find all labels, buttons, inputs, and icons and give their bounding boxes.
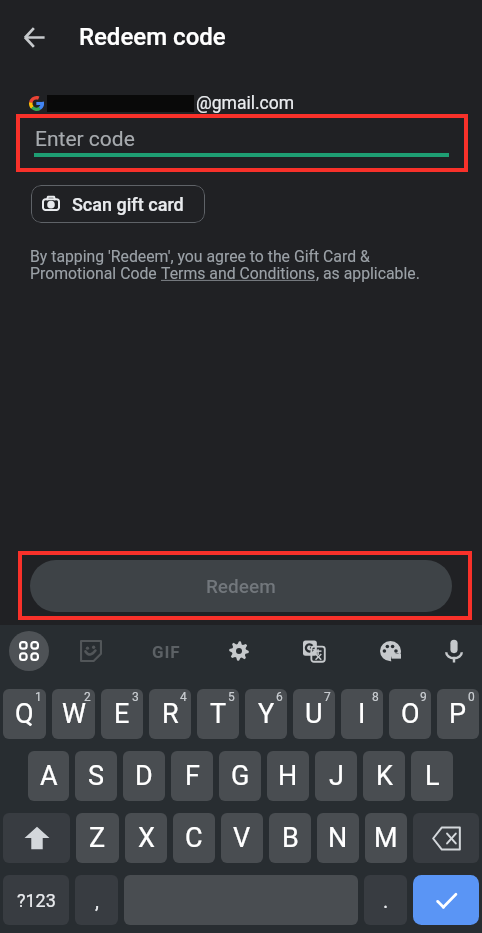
staticText: 0: [468, 690, 475, 704]
staticText: , as applicable.: [316, 264, 420, 283]
staticText: Scan gift card: [72, 194, 184, 215]
staticText: K: [376, 760, 393, 792]
button[interactable]: Switch keyboard mode: [9, 631, 49, 671]
button[interactable]: Enter: [413, 875, 479, 925]
button[interactable]: L: [411, 751, 453, 801]
button[interactable]: N: [317, 813, 359, 863]
staticText: L: [425, 760, 440, 792]
staticText: .: [383, 889, 389, 912]
button[interactable]: E: [101, 689, 143, 739]
button[interactable]: Shift: [3, 813, 70, 863]
button[interactable]: W: [52, 689, 95, 739]
staticText: Q: [15, 698, 34, 730]
staticText: 1: [35, 690, 42, 704]
button[interactable]: U: [293, 689, 335, 739]
button[interactable]: M: [365, 813, 407, 863]
staticText: S: [88, 760, 105, 792]
button[interactable]: Back: [16, 19, 53, 56]
staticText: U: [305, 698, 323, 730]
button[interactable]: ?123: [3, 875, 69, 925]
staticText: 5: [228, 690, 235, 704]
staticText: Promotional Code: [30, 264, 161, 283]
button[interactable]: R: [149, 689, 191, 739]
staticText: G: [231, 760, 250, 792]
button[interactable]: H: [267, 751, 309, 801]
button[interactable]: .: [364, 875, 407, 925]
staticText: ?123: [17, 890, 56, 911]
button[interactable]: S: [75, 751, 117, 801]
button[interactable]: Q: [3, 689, 46, 739]
button[interactable]: G: [219, 751, 261, 801]
staticText: O: [401, 698, 420, 730]
staticText: J: [329, 760, 344, 792]
button[interactable]: V: [221, 813, 263, 863]
button[interactable]: D: [123, 751, 165, 801]
button[interactable]: Z: [76, 813, 119, 863]
staticText: V: [233, 822, 251, 854]
button[interactable]: Settings: [217, 629, 261, 673]
staticText: 4: [180, 690, 187, 704]
staticText: @gmail.com: [196, 93, 295, 114]
staticText: Z: [89, 822, 106, 854]
staticText: E: [114, 698, 130, 730]
button[interactable]: J: [315, 751, 357, 801]
staticText: GIF: [152, 642, 181, 662]
button[interactable]: Terms and Conditions: [161, 264, 316, 283]
staticText: 8: [372, 690, 379, 704]
staticText: 9: [420, 690, 427, 704]
staticText: X: [138, 822, 155, 854]
button[interactable]: Voice input: [432, 629, 476, 673]
button[interactable]: Y: [245, 689, 287, 739]
staticText: F: [185, 760, 200, 792]
button[interactable]: T: [197, 689, 239, 739]
staticText: D: [135, 760, 153, 792]
staticText: 2: [84, 690, 91, 704]
staticText: 3: [132, 690, 139, 704]
button[interactable]: K: [363, 751, 405, 801]
button[interactable]: Theme: [368, 629, 412, 673]
staticText: 7: [324, 690, 331, 704]
staticText: Enter code: [35, 127, 135, 152]
button[interactable]: F: [171, 751, 213, 801]
staticText: Y: [258, 698, 275, 730]
staticText: N: [328, 822, 348, 854]
staticText: I: [358, 698, 366, 730]
staticText: M: [374, 822, 398, 854]
staticText: R: [162, 698, 179, 730]
staticText: Redeem code: [79, 23, 226, 51]
button[interactable]: GIF: [144, 629, 189, 674]
staticText: T: [210, 698, 227, 730]
button[interactable]: Backspace: [413, 813, 479, 863]
button[interactable]: P: [437, 689, 479, 739]
button[interactable]: Translate: [292, 629, 336, 673]
staticText: By tapping 'Redeem', you agree to the Gi…: [30, 247, 370, 266]
staticText: ,: [95, 889, 99, 912]
button[interactable]: X: [125, 813, 167, 863]
button[interactable]: ,: [75, 875, 118, 925]
button[interactable]: O: [389, 689, 431, 739]
button[interactable]: Redeem: [30, 560, 452, 612]
staticText: W: [62, 698, 86, 730]
button[interactable]: Stickers: [69, 629, 113, 673]
button[interactable]: I: [341, 689, 383, 739]
staticText: B: [282, 822, 299, 854]
button[interactable]: A: [28, 751, 69, 801]
staticText: C: [185, 822, 203, 854]
button[interactable]: C: [173, 813, 215, 863]
staticText: 6: [276, 690, 283, 704]
staticText: P: [449, 698, 467, 730]
button[interactable]: B: [269, 813, 311, 863]
staticText: H: [278, 760, 298, 792]
button[interactable]: Scan gift card: [31, 185, 205, 223]
staticText: A: [40, 760, 58, 792]
staticText: Redeem: [206, 575, 276, 597]
